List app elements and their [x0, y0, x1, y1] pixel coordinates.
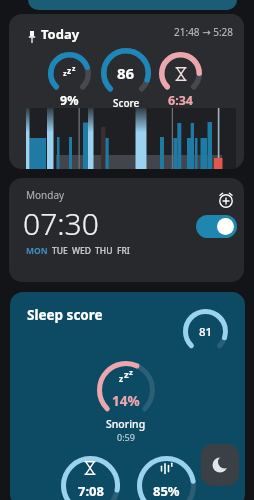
button[interactable]	[196, 215, 237, 238]
staticText: 86	[117, 63, 135, 83]
staticText: 0:59	[117, 431, 135, 443]
staticText: TUE	[52, 245, 68, 257]
button[interactable]: Today	[9, 14, 244, 169]
staticText: z	[119, 373, 124, 384]
staticText: z	[67, 65, 72, 76]
staticText: z	[124, 368, 129, 381]
staticText: z	[72, 64, 76, 73]
button[interactable]: Sleep score	[10, 292, 245, 500]
staticText: Monday	[26, 188, 65, 202]
staticText: Snoring	[106, 417, 146, 431]
button[interactable]	[215, 189, 237, 211]
staticText: WED	[72, 245, 91, 257]
staticText: z	[63, 68, 67, 78]
button[interactable]	[201, 444, 239, 486]
staticText: Sleep score	[27, 306, 103, 324]
staticText: Today	[41, 25, 80, 43]
button[interactable]: Monday	[9, 178, 244, 282]
staticText: 81	[199, 324, 213, 340]
staticText: 6:34	[168, 92, 193, 109]
staticText: 14%	[112, 392, 140, 410]
staticText: z	[129, 367, 133, 378]
staticText: 85%	[153, 482, 180, 500]
staticText: Score	[113, 96, 140, 110]
staticText: THU	[95, 245, 113, 257]
staticText: 7:08	[78, 482, 104, 500]
staticText: MON	[26, 245, 48, 257]
staticText: FRI	[117, 245, 130, 257]
staticText: 07:30	[23, 203, 99, 244]
staticText: 21:48 → 5:28	[129, 25, 233, 39]
staticText: 9%	[60, 92, 79, 109]
